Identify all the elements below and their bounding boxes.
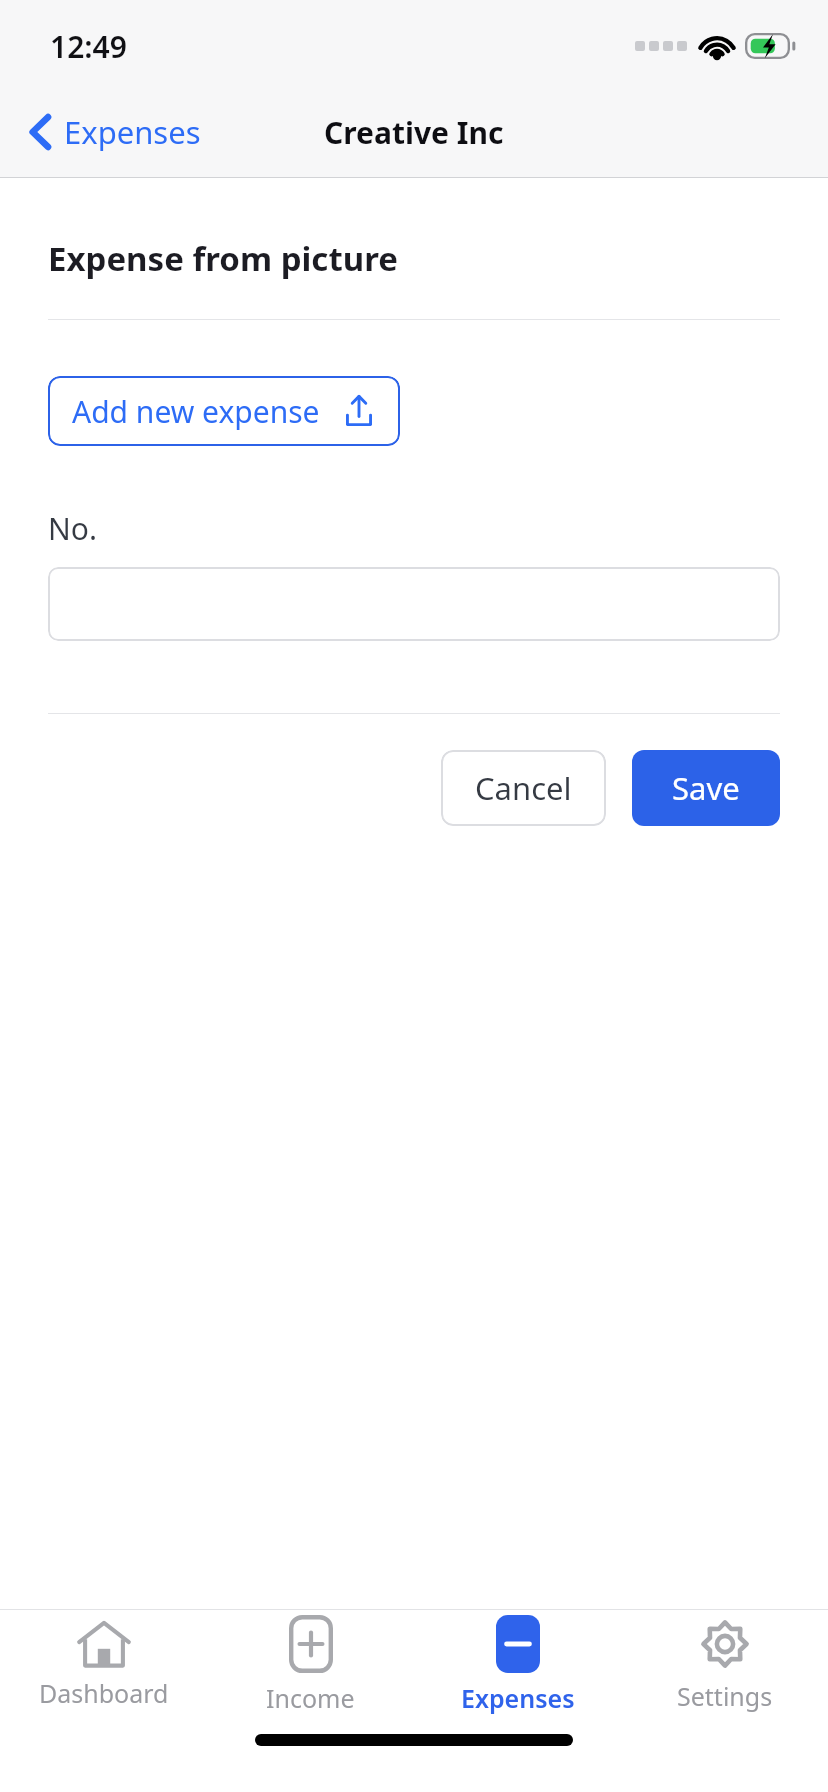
button[interactable]: Expenses (414, 1610, 621, 1720)
staticText: Income (266, 1681, 355, 1715)
staticText: Dashboard (39, 1676, 169, 1710)
staticText: Expenses (64, 111, 201, 153)
staticText: Expense from picture (48, 236, 398, 281)
button[interactable]: Add new expense (48, 376, 400, 446)
button[interactable]: Cancel (441, 750, 606, 826)
staticText: No. (48, 508, 97, 549)
staticText: Expenses (461, 1681, 575, 1715)
staticText: Add new expense (72, 391, 320, 432)
button[interactable]: Save (632, 750, 780, 826)
button[interactable]: Expenses (22, 105, 209, 159)
staticText: Settings (677, 1679, 773, 1713)
button[interactable] (48, 567, 780, 641)
staticText: Creative Inc (324, 112, 504, 153)
staticText: Cancel (475, 767, 572, 809)
staticText: 12:49 (50, 26, 127, 67)
button[interactable]: Settings (621, 1610, 828, 1720)
button[interactable]: Income (207, 1610, 414, 1720)
button[interactable]: Dashboard (0, 1610, 207, 1720)
staticText: Save (672, 767, 740, 809)
